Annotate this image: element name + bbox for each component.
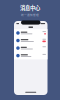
staticText: 消息中心 <box>20 4 40 11</box>
button[interactable] <box>14 37 47 44</box>
button[interactable] <box>14 52 47 59</box>
staticText: 统一通知管理 <box>21 13 39 17</box>
button[interactable] <box>14 44 47 52</box>
button[interactable] <box>14 29 47 37</box>
